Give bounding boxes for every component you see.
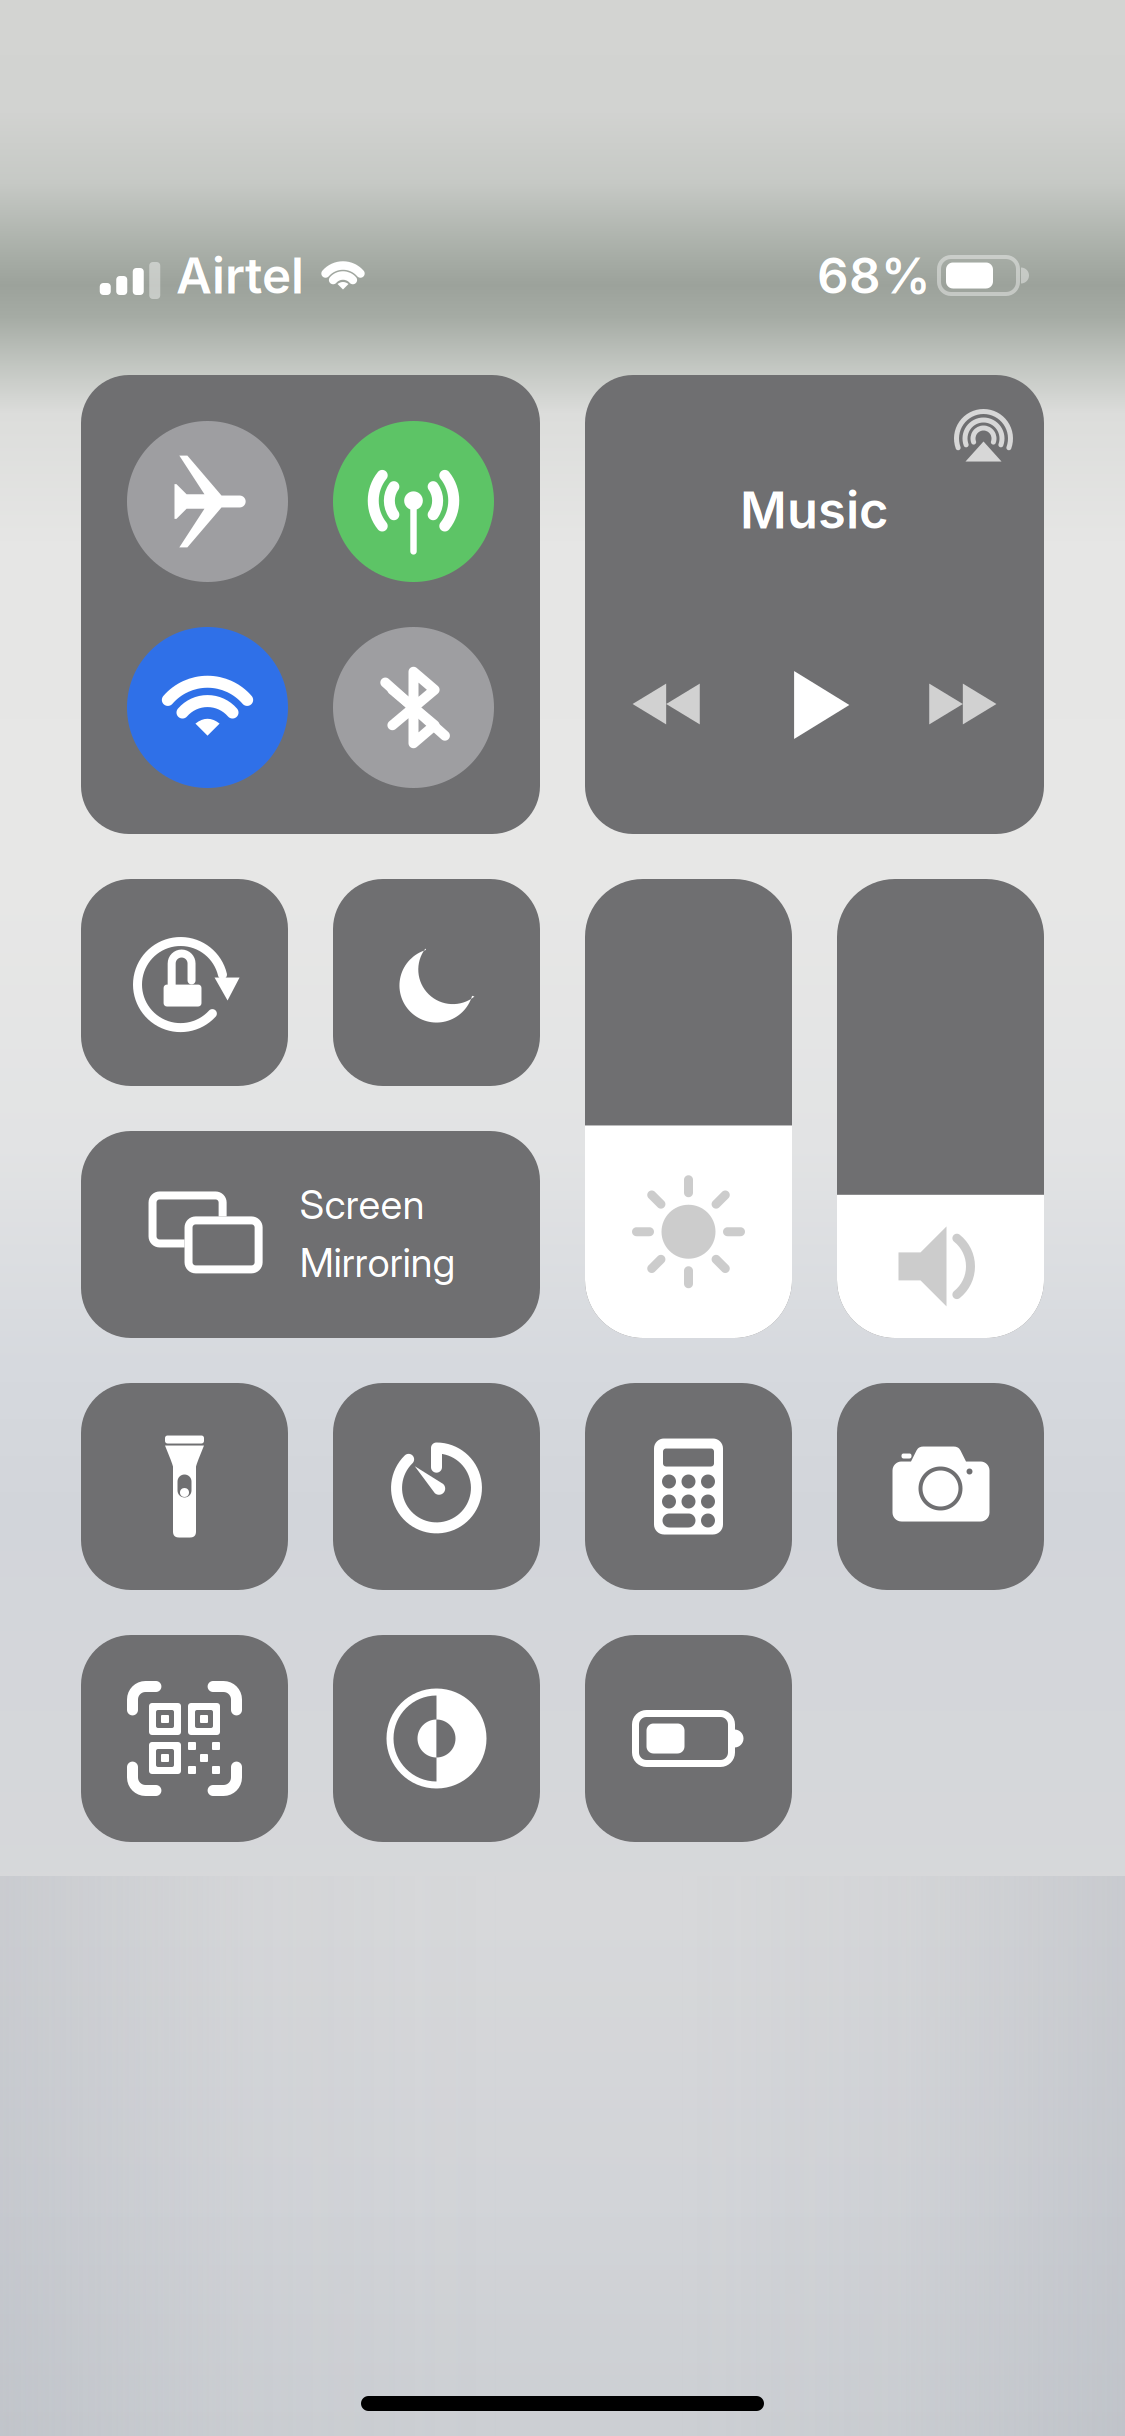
button[interactable]: Camera (837, 1383, 1044, 1590)
staticText: 68% (817, 246, 931, 305)
button[interactable]: Play (752, 640, 882, 770)
button[interactable]: Wi-Fi (127, 627, 288, 788)
button[interactable]: Timer (333, 1383, 540, 1590)
button[interactable]: Screen Mirroring (81, 1131, 540, 1338)
button[interactable]: Low Power Mode (585, 1635, 792, 1842)
button[interactable]: Scan QR Code (81, 1635, 288, 1842)
button[interactable]: Volume (837, 879, 1044, 1338)
button[interactable]: AirPlay (948, 403, 1018, 473)
button[interactable]: Bluetooth (333, 627, 494, 788)
button[interactable]: Calculator (585, 1383, 792, 1590)
button[interactable]: Brightness (585, 879, 792, 1338)
staticText: Screen (299, 1180, 424, 1229)
button[interactable]: Rotation Lock (81, 879, 288, 1086)
staticText: Music (740, 479, 889, 541)
staticText: Airtel (176, 246, 304, 305)
button[interactable]: Flashlight (81, 1383, 288, 1590)
button[interactable]: Airplane Mode (127, 421, 288, 582)
button[interactable]: Cellular Data (333, 421, 494, 582)
staticText: Mirroring (299, 1238, 455, 1287)
button[interactable]: Previous Track (601, 639, 731, 769)
button[interactable]: Next Track (897, 639, 1027, 769)
button[interactable]: Dark Mode (333, 1635, 540, 1842)
button[interactable]: Do Not Disturb (333, 879, 540, 1086)
